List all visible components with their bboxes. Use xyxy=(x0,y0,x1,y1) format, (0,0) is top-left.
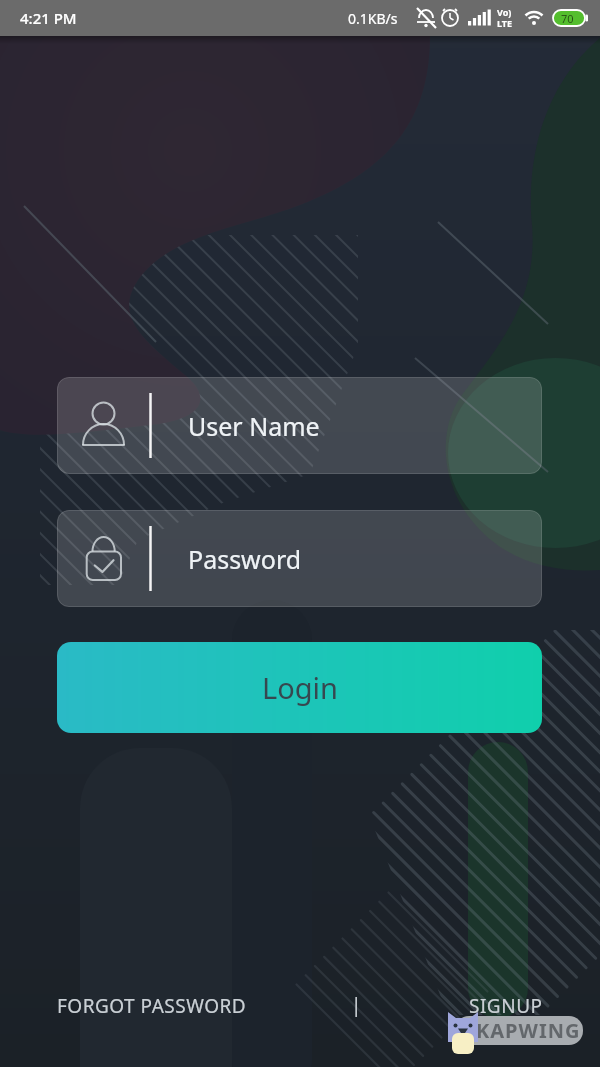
staticText: FORGOT PASSWORD xyxy=(57,993,247,1019)
staticText: Password xyxy=(188,542,302,576)
button[interactable]: SIGNUP xyxy=(462,986,550,1026)
button[interactable]: User Name xyxy=(57,377,542,474)
button[interactable]: Password xyxy=(57,510,542,607)
staticText: Vo) xyxy=(497,6,512,18)
staticText: KAPWING xyxy=(476,1017,581,1044)
button[interactable]: Login xyxy=(57,642,542,733)
staticText: | xyxy=(351,992,362,1018)
staticText: LTE xyxy=(497,17,513,29)
staticText: 4:21 PM xyxy=(20,8,77,28)
staticText: 70 xyxy=(561,11,574,26)
staticText: Login xyxy=(262,668,338,707)
staticText: User Name xyxy=(188,409,320,443)
staticText: 0.1KB/s xyxy=(348,9,398,28)
button[interactable]: FORGOT PASSWORD xyxy=(50,986,254,1026)
staticText: SIGNUP xyxy=(469,993,543,1019)
